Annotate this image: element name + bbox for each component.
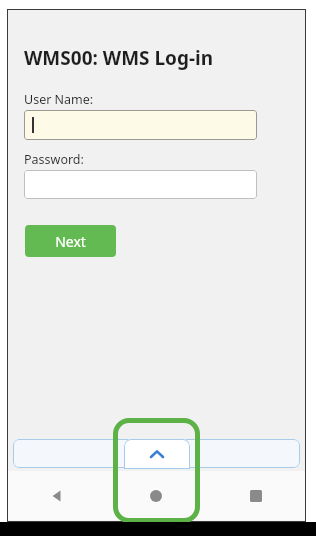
button[interactable]	[24, 170, 257, 199]
staticText: User Name:	[24, 91, 94, 108]
button[interactable]	[24, 110, 257, 140]
staticText: Password:	[24, 151, 84, 168]
staticText: Next	[55, 232, 86, 251]
button[interactable]: Expand	[124, 439, 190, 469]
button[interactable]: Next	[25, 225, 116, 257]
button[interactable]: Back	[7, 471, 106, 520]
button[interactable]: Recent apps	[206, 471, 306, 520]
button[interactable]: Home	[106, 471, 206, 520]
staticText: WMS00: WMS Log-in	[24, 45, 214, 71]
